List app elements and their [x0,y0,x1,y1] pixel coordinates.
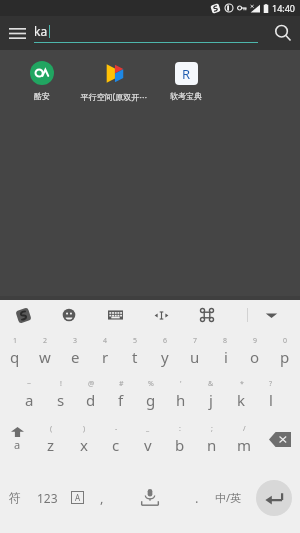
button[interactable]: Space, voice input [114,462,186,533]
button[interactable]: 1 [0,330,30,372]
staticText: # [119,379,124,389]
button[interactable]: Shift [0,416,34,462]
staticText: h [176,390,186,410]
button[interactable]: 5 [120,330,150,372]
staticText: f [118,390,124,410]
button[interactable]: ! [45,372,76,416]
staticText: q [10,347,20,367]
button[interactable]: , [90,462,114,533]
staticText: 2 [43,336,48,346]
button[interactable]: / [228,416,260,462]
button[interactable]: ? [256,372,286,416]
button[interactable]: 平行空间(原双开大… [78,52,150,102]
staticText: ? [269,379,273,389]
staticText: d [86,390,96,410]
staticText: ! [60,379,62,389]
button[interactable]: - [100,416,132,462]
staticText: % [148,379,154,389]
button[interactable]: ~ [14,372,45,416]
button[interactable]: Shortcuts [184,300,230,330]
staticText: m [237,435,252,455]
button[interactable]: Hide keyboard [248,300,294,330]
staticText: 7 [193,336,198,346]
staticText: R [182,65,191,83]
staticText: k [237,390,246,410]
button[interactable]: % [136,372,166,416]
button[interactable]: * [226,372,256,416]
staticText: 符 [9,490,21,505]
staticText: 123 [37,490,58,506]
button[interactable]: @ [76,372,106,416]
button[interactable]: Input language [64,462,90,533]
staticText: ~ [27,379,32,389]
button[interactable]: ( [34,416,67,462]
staticText: 14:40 [272,2,296,14]
staticText: b [175,435,185,455]
staticText: n [207,435,217,455]
button[interactable]: _ [132,416,164,462]
staticText: g [146,390,156,410]
staticText: i [224,347,228,367]
staticText: r [102,347,109,367]
button[interactable]: 8 [210,330,240,372]
staticText: ' [180,379,182,389]
button[interactable]: Menu [0,16,34,50]
staticText: u [190,347,200,367]
button[interactable]: 符 [0,462,30,533]
staticText: : [179,424,181,434]
staticText: z [47,435,55,455]
button[interactable]: Emoji [46,300,92,330]
staticText: ( [50,424,53,434]
button[interactable]: 123 [30,462,64,533]
button[interactable]: 2 [30,330,60,372]
button[interactable]: 9 [240,330,270,372]
button[interactable]: 酷安 [6,52,78,101]
staticText: 6 [163,336,168,346]
button[interactable]: 4 [90,330,120,372]
button[interactable]: 0 [270,330,300,372]
staticText: s [57,390,65,410]
button[interactable]: Keyboard layout [92,300,138,330]
staticText: & [208,379,214,389]
staticText: 平行空间(原双开大… [78,91,150,102]
staticText: 1 [13,336,18,346]
staticText: x [80,435,88,455]
staticText: 5 [133,336,138,346]
staticText: 3 [73,336,78,346]
button[interactable]: 3 [60,330,90,372]
button[interactable]: R [150,52,222,101]
staticText: o [250,347,260,367]
button[interactable]: & [196,372,226,416]
button[interactable]: ; [196,416,228,462]
staticText: 0 [283,336,288,346]
staticText: t [132,347,138,367]
staticText: j [209,390,213,410]
staticText: _ [146,424,150,434]
button[interactable]: ) [67,416,100,462]
staticText: 酷安 [34,91,50,101]
button[interactable]: : [164,416,196,462]
button[interactable]: # [106,372,136,416]
button[interactable]: 6 [150,330,180,372]
staticText: * [240,379,244,389]
staticText: y [161,347,169,367]
staticText: @ [88,379,95,389]
staticText: ) [83,424,86,434]
button[interactable]: Sogou input settings [0,300,46,330]
button[interactable]: Backspace [260,416,300,462]
staticText: ka [34,23,48,39]
staticText: 软考宝典 [170,91,202,101]
staticText: e [71,347,80,367]
staticText: p [280,347,290,367]
staticText: 中/英 [215,490,242,505]
staticText: A [75,492,81,503]
button[interactable]: 7 [180,330,210,372]
button[interactable]: Search [266,16,300,50]
button[interactable]: Enter [256,480,292,516]
button[interactable]: Move cursor [138,300,184,330]
staticText: ; [211,424,213,434]
staticText: a [14,437,21,452]
button[interactable]: ' [166,372,196,416]
button[interactable]: 中/英 [208,462,248,533]
button[interactable]: . [186,462,208,533]
